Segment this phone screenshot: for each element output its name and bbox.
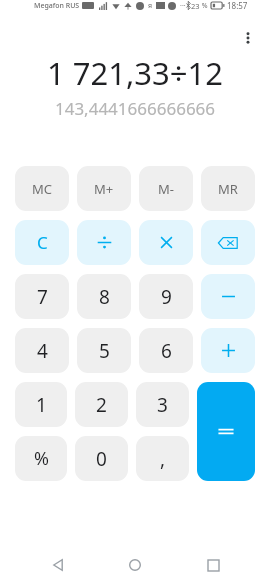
- button[interactable]: 0: [75, 436, 128, 481]
- button[interactable]: Backspace: [201, 220, 255, 265]
- staticText: MR: [218, 180, 238, 198]
- button[interactable]: Equals: [197, 382, 255, 481]
- button[interactable]: Back: [38, 545, 78, 585]
- button[interactable]: MR: [201, 166, 255, 211]
- button[interactable]: 7: [15, 274, 69, 319]
- button[interactable]: Minus: [201, 274, 255, 319]
- staticText: 7: [37, 284, 48, 310]
- staticText: 23: [191, 1, 200, 11]
- button[interactable]: %: [15, 436, 67, 481]
- button[interactable]: Recents: [193, 545, 233, 585]
- staticText: я: [148, 1, 153, 11]
- button[interactable]: 4: [15, 328, 69, 373]
- staticText: 143,4441666666666: [14, 97, 256, 120]
- staticText: 3: [157, 392, 168, 418]
- staticText: 6: [161, 338, 172, 364]
- button[interactable]: 8: [77, 274, 131, 319]
- button[interactable]: More options: [234, 24, 262, 52]
- staticText: ,: [160, 446, 166, 472]
- staticText: ···: [180, 1, 186, 11]
- button[interactable]: 6: [139, 328, 193, 373]
- staticText: C: [37, 231, 48, 254]
- staticText: M-: [158, 180, 174, 198]
- staticText: 8: [99, 284, 110, 310]
- staticText: %: [34, 446, 49, 471]
- button[interactable]: 9: [139, 274, 193, 319]
- button[interactable]: ,: [136, 436, 189, 481]
- button[interactable]: Plus: [201, 328, 255, 373]
- staticText: 9: [161, 284, 172, 310]
- button[interactable]: Multiply: [139, 220, 193, 265]
- staticText: 5: [99, 338, 110, 364]
- button[interactable]: 1: [15, 382, 67, 427]
- button[interactable]: M-: [139, 166, 193, 211]
- button[interactable]: 5: [77, 328, 131, 373]
- button[interactable]: 2: [75, 382, 128, 427]
- button[interactable]: M+: [77, 166, 131, 211]
- button[interactable]: 3: [136, 382, 189, 427]
- staticText: M+: [94, 180, 114, 198]
- button[interactable]: Divide: [77, 220, 131, 265]
- staticText: 4: [37, 338, 48, 364]
- staticText: 18:57: [227, 0, 248, 11]
- staticText: %: [200, 1, 208, 11]
- button[interactable]: C: [15, 220, 69, 265]
- staticText: 0: [96, 446, 107, 472]
- staticText: 1: [36, 392, 47, 418]
- button[interactable]: Home: [115, 545, 155, 585]
- staticText: 1 721,33÷12: [14, 52, 256, 94]
- staticText: 2: [96, 392, 107, 418]
- staticText: Megafon RUS: [34, 1, 80, 11]
- staticText: MC: [32, 180, 53, 198]
- button[interactable]: MC: [15, 166, 69, 211]
